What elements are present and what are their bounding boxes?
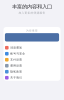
staticText: 支付设置 <box>10 58 22 61</box>
staticText: 隐私政策 <box>10 70 22 73</box>
staticText: 关于我们 <box>10 76 22 79</box>
staticText: 账号与安全 <box>10 52 25 55</box>
staticText: 为你推荐 <box>26 29 38 32</box>
staticText: 消息通知 <box>10 46 22 49</box>
staticText: 加入更多的便捷服务 <box>18 11 45 14</box>
staticText: 通用设置 <box>10 64 22 67</box>
staticText: 丰富的内容和入口 <box>12 3 52 10</box>
